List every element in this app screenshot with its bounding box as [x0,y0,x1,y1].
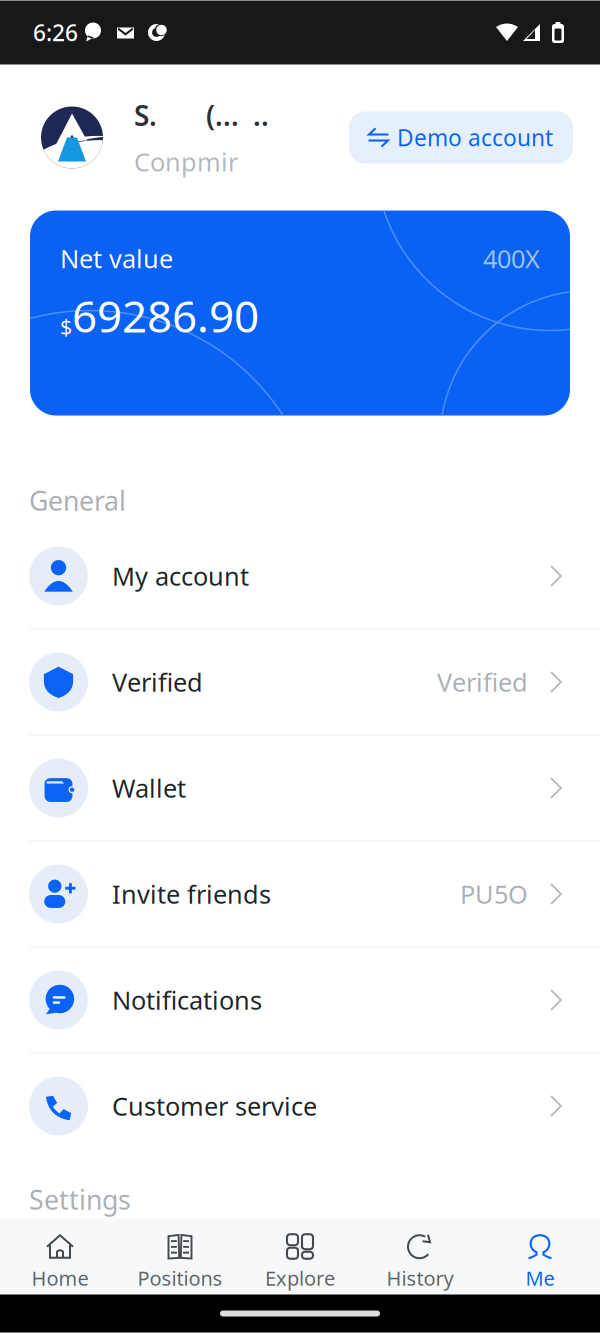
button[interactable]: Customer service [0,1053,600,1158]
staticText: Me [525,1265,554,1291]
button[interactable]: Demo account [349,111,573,163]
staticText: My account [112,559,249,593]
button[interactable]: Positions [120,1218,240,1294]
staticText: Wallet [112,771,186,805]
staticText: 400X [483,241,540,275]
button[interactable]: My account [0,523,600,628]
staticText: Demo account [397,122,553,152]
staticText: PU5O [460,877,528,911]
staticText: Verified [437,665,528,699]
staticText: Verified [112,665,203,699]
button[interactable]: Me [480,1218,600,1294]
staticText: 69286.90 [72,286,259,344]
staticText: Notifications [112,983,262,1017]
button[interactable]: Wallet [0,735,600,840]
staticText: Conpmir [134,145,238,178]
button[interactable]: Home [0,1218,120,1294]
button[interactable]: Explore [240,1218,360,1294]
staticText: Home [31,1265,88,1291]
staticText: Customer service [112,1089,317,1123]
staticText: Net value [60,241,173,275]
button[interactable]: Notifications [0,947,600,1052]
button[interactable]: Verified [0,629,600,734]
staticText: History [386,1265,453,1291]
staticText: Invite friends [112,877,271,911]
button[interactable]: Invite friends [0,841,600,946]
staticText: Explore [265,1265,335,1291]
staticText: Positions [137,1265,222,1291]
staticText: General [29,483,126,518]
staticText: $ [60,312,72,340]
button[interactable]: History [360,1218,480,1294]
staticText: Settings [29,1182,131,1217]
staticText: S. (... .. [134,97,269,134]
staticText: 6:26 [33,17,78,47]
